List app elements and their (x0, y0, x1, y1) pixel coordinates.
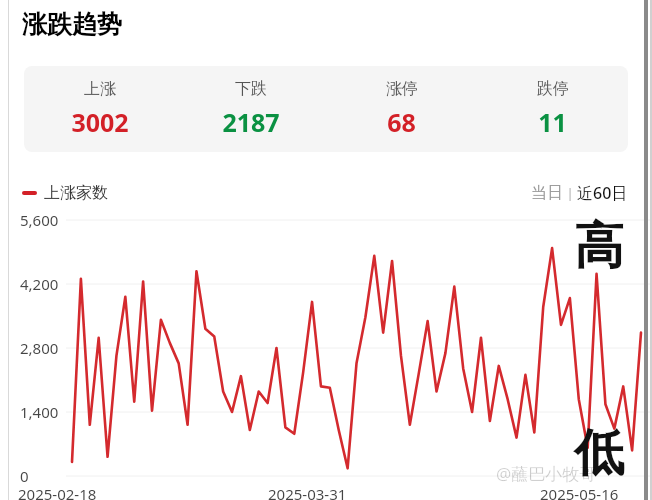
staticText: 2025-03-31 (268, 484, 347, 500)
staticText: | (563, 184, 577, 202)
staticText: 2,800 (20, 338, 59, 358)
staticText: 11 (538, 105, 567, 139)
button[interactable]: 当日 (531, 183, 563, 203)
staticText: 68 (387, 105, 416, 139)
staticText: 5,600 (20, 210, 59, 230)
staticText: 上涨 (84, 79, 116, 99)
staticText: 1,400 (20, 402, 59, 422)
staticText: 上涨家数 (44, 183, 108, 203)
staticText: 跌停 (537, 79, 569, 99)
staticText: 0 (20, 466, 29, 486)
staticText: 2187 (222, 105, 280, 139)
staticText: 涨停 (386, 79, 418, 99)
button[interactable]: 下跌 (175, 66, 326, 152)
staticText: 涨跌趋势 (22, 9, 122, 40)
button[interactable]: 上涨 (24, 66, 175, 152)
staticText: 当日 (531, 183, 563, 203)
staticText: 下跌 (235, 79, 267, 99)
button[interactable]: 近60日 (577, 182, 628, 204)
button[interactable]: 涨停 (326, 66, 477, 152)
staticText: 4,200 (20, 274, 59, 294)
staticText: 高 (574, 215, 624, 278)
button[interactable]: 上涨家数 (22, 183, 108, 203)
staticText: 2025-05-16 (540, 484, 619, 500)
button[interactable]: 上涨 (24, 66, 628, 152)
staticText: 3002 (71, 105, 129, 139)
staticText: 近60日 (577, 182, 628, 204)
staticText: @蘸巴小牧哥 (496, 462, 597, 485)
staticText: 2025-02-18 (18, 484, 97, 500)
button[interactable]: 跌停 (477, 66, 628, 152)
staticText: 低 (574, 422, 624, 485)
